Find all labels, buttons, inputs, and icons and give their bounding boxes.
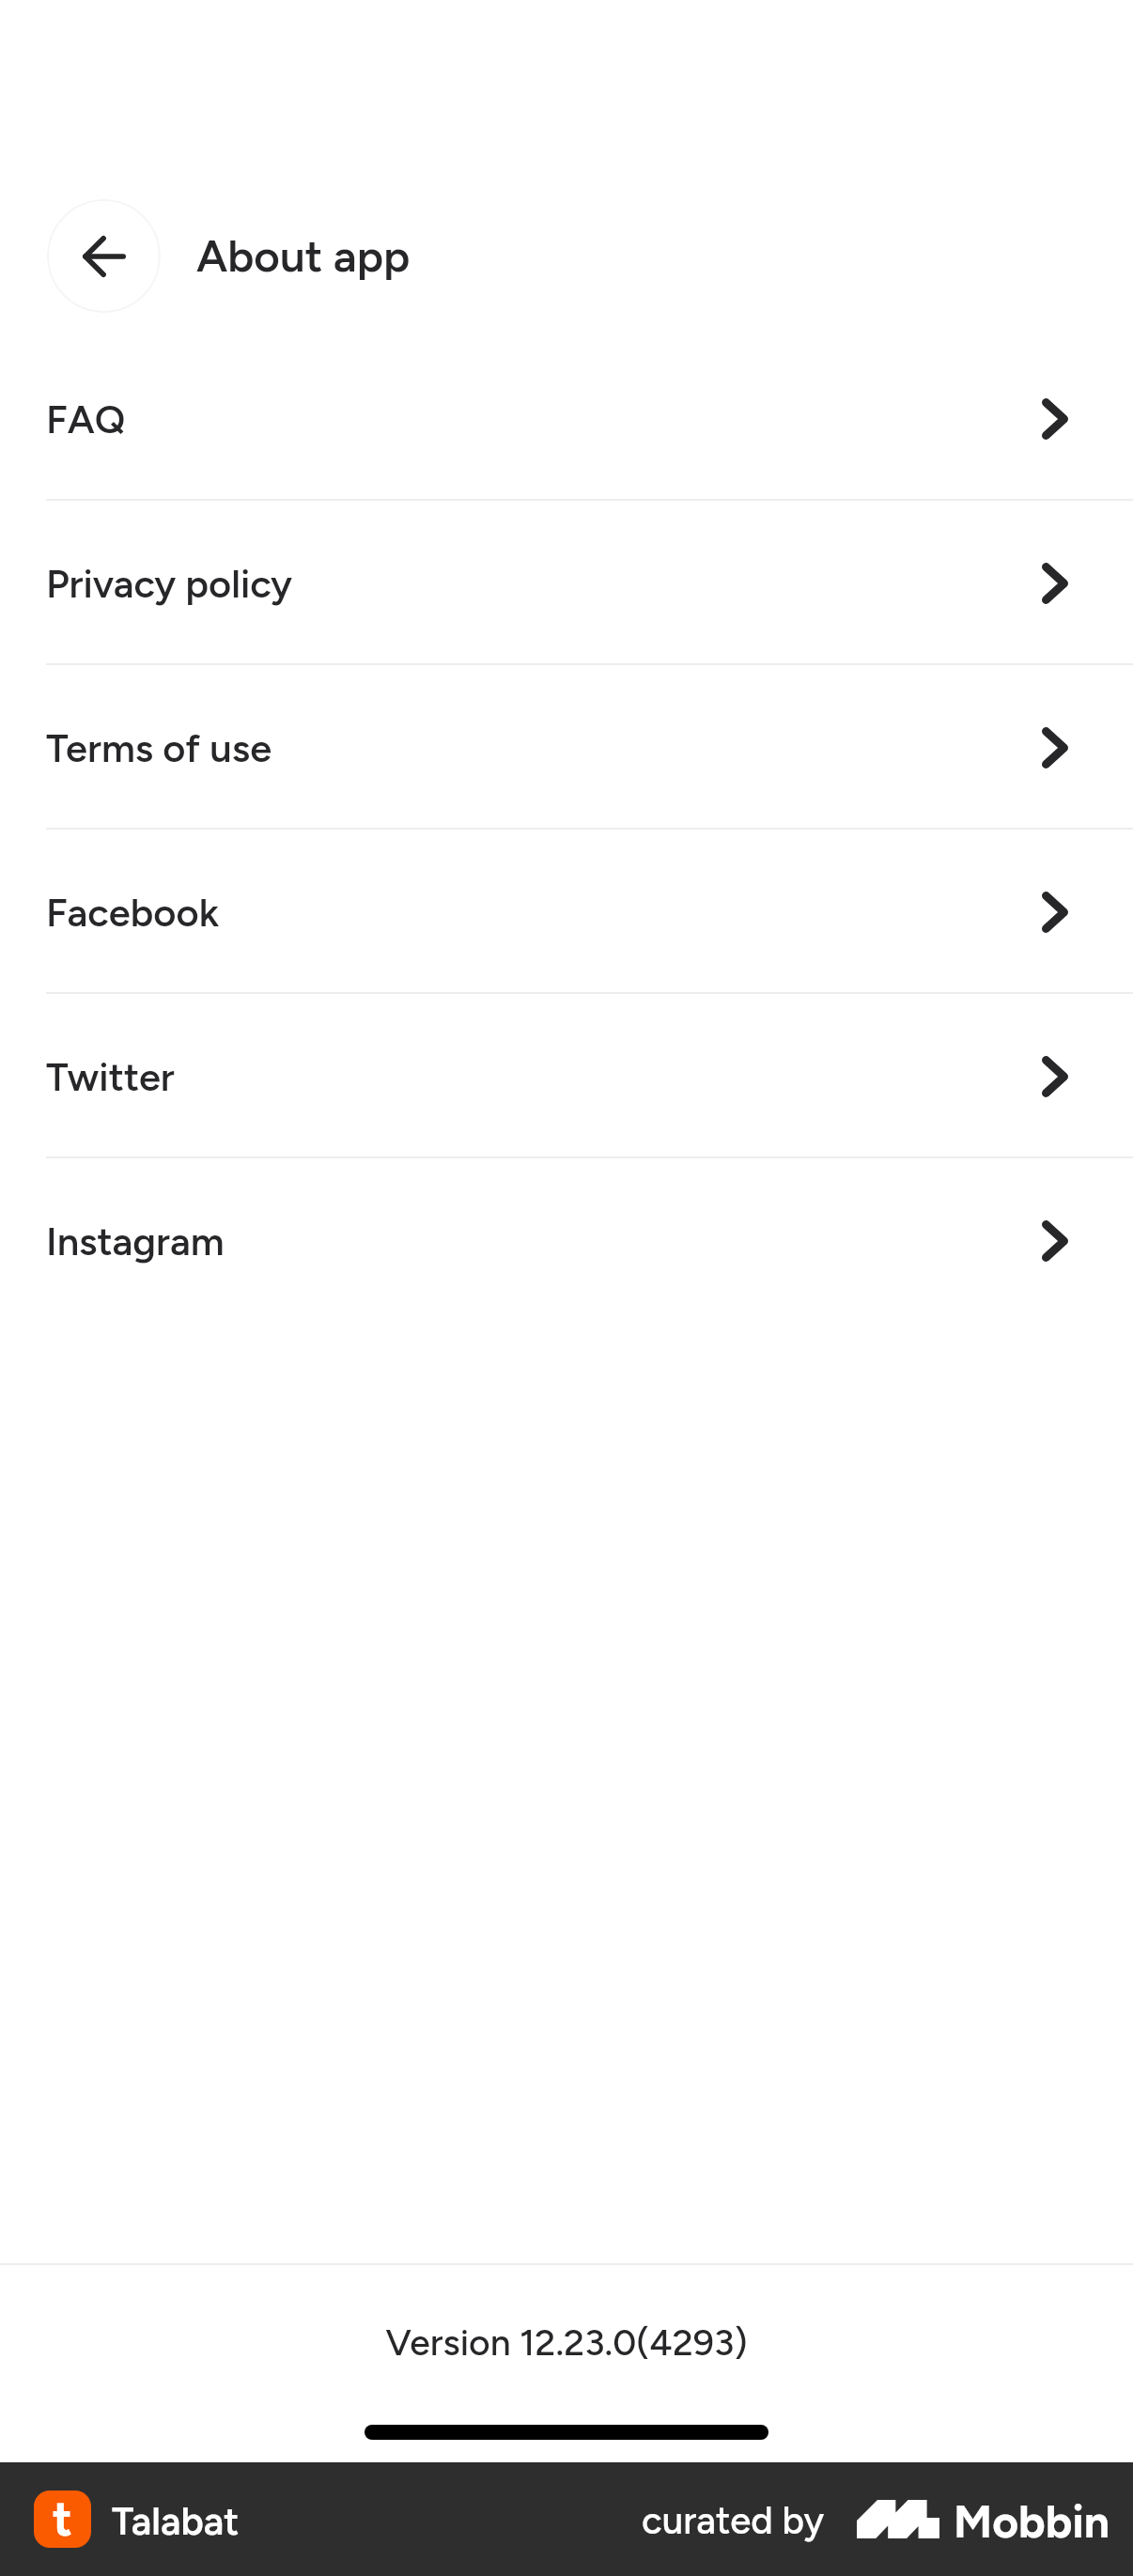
button[interactable]: Twitter [0, 994, 1133, 1158]
button[interactable]: Terms of use [0, 665, 1133, 830]
button[interactable]: FAQ [0, 336, 1133, 501]
staticText: Instagram [46, 1218, 225, 1265]
button[interactable]: Privacy policy [0, 501, 1133, 665]
staticText: t [53, 2491, 72, 2547]
button[interactable]: Back [47, 199, 161, 313]
staticText: About app [196, 229, 411, 283]
staticText: FAQ [46, 396, 126, 442]
staticText: Mobbin [954, 2494, 1110, 2549]
staticText: Privacy policy [46, 560, 293, 607]
staticText: Version 12.23.0(4293) [385, 2320, 748, 2365]
staticText: Facebook [46, 889, 220, 936]
staticText: Twitter [46, 1053, 175, 1100]
staticText: Talabat [112, 2498, 240, 2544]
staticText: Terms of use [46, 724, 272, 771]
button[interactable]: Facebook [0, 830, 1133, 994]
button[interactable]: Instagram [0, 1158, 1133, 1323]
staticText: curated by [642, 2498, 825, 2543]
